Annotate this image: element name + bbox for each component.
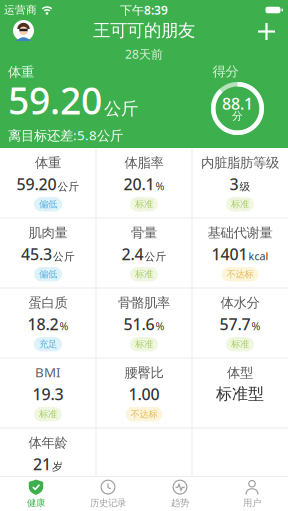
staticText: BMI: [35, 363, 61, 381]
staticText: 19.3: [32, 383, 63, 405]
button[interactable]: 体年龄: [0, 428, 96, 498]
staticText: 偏低: [39, 268, 57, 280]
button[interactable]: 健康: [0, 477, 72, 511]
staticText: 得分: [212, 63, 238, 80]
staticText: 不达标: [226, 268, 253, 280]
staticText: 下午8:39: [120, 2, 168, 18]
button[interactable]: 蛋白质: [0, 288, 96, 358]
staticText: 肌肉量: [28, 225, 67, 241]
staticText: 1.00: [128, 383, 159, 405]
staticText: 健康: [27, 497, 45, 509]
staticText: 45.3: [21, 243, 52, 265]
staticText: 离目标还差:5.8公斤: [8, 126, 123, 144]
button[interactable]: 趋势: [144, 477, 216, 511]
button[interactable]: 体型: [192, 358, 288, 428]
button[interactable]: 历史记录: [72, 477, 144, 511]
staticText: %: [155, 319, 164, 333]
staticText: 标准型: [216, 384, 264, 404]
staticText: 标准: [135, 338, 153, 350]
staticText: 公斤: [144, 250, 166, 263]
button[interactable]: 骨骼肌率: [96, 288, 192, 358]
staticText: 骨量: [131, 225, 157, 241]
staticText: 蛋白质: [28, 295, 67, 311]
button[interactable]: Add: [258, 20, 288, 40]
staticText: 1401: [211, 243, 247, 265]
staticText: 腰臀比: [124, 365, 163, 381]
staticText: 公斤: [104, 98, 138, 119]
staticText: 标准: [231, 338, 249, 350]
staticText: 20.1: [123, 173, 154, 195]
staticText: 51.6: [123, 313, 154, 335]
button[interactable]: 腰臀比: [96, 358, 192, 428]
staticText: 王可可的朋友: [93, 20, 195, 41]
staticText: 体年龄: [28, 435, 67, 451]
button[interactable]: Profile: [0, 20, 34, 41]
staticText: 标准: [135, 198, 153, 210]
staticText: 用户: [243, 497, 261, 509]
button[interactable]: 用户: [216, 477, 288, 511]
staticText: 标准: [231, 198, 249, 210]
staticText: 28天前: [125, 46, 163, 62]
staticText: 体型: [227, 365, 253, 381]
staticText: 历史记录: [90, 497, 126, 509]
button[interactable]: 基础代谢量: [192, 218, 288, 288]
staticText: 59.20: [16, 173, 56, 195]
staticText: %: [251, 319, 260, 333]
staticText: 趋势: [171, 497, 189, 509]
staticText: 基础代谢量: [207, 225, 272, 241]
staticText: kcal: [248, 249, 268, 263]
button[interactable]: 体重: [0, 148, 96, 218]
staticText: 2.4: [121, 243, 143, 265]
staticText: 充足: [39, 338, 57, 350]
staticText: 体重: [8, 64, 34, 80]
staticText: 运营商: [4, 3, 37, 16]
staticText: 57.7: [219, 313, 250, 335]
staticText: 体水分: [220, 295, 259, 311]
staticText: 公斤: [53, 250, 75, 263]
staticText: 偏低: [39, 198, 57, 210]
staticText: %: [59, 319, 68, 333]
staticText: 体脂率: [124, 155, 163, 171]
staticText: 不达标: [130, 408, 157, 420]
button[interactable]: 内脏脂肪等级: [192, 148, 288, 218]
staticText: 3: [229, 173, 238, 195]
staticText: 21: [33, 453, 51, 475]
staticText: 骨骼肌率: [118, 295, 170, 311]
staticText: 59.20: [8, 75, 102, 125]
staticText: 体重: [35, 155, 61, 171]
staticText: 岁: [52, 460, 63, 473]
staticText: 分: [232, 109, 243, 122]
staticText: 公斤: [57, 180, 79, 193]
staticText: 级: [239, 180, 250, 193]
button[interactable]: 肌肉量: [0, 218, 96, 288]
staticText: 88.1: [222, 93, 253, 114]
staticText: 标准: [135, 268, 153, 280]
staticText: 标准: [39, 408, 57, 420]
button[interactable]: BMI: [0, 358, 96, 428]
staticText: %: [155, 179, 164, 193]
button[interactable]: 体水分: [192, 288, 288, 358]
staticText: 18.2: [27, 313, 58, 335]
button[interactable]: 骨量: [96, 218, 192, 288]
staticText: 内脏脂肪等级: [201, 155, 279, 171]
button[interactable]: 体脂率: [96, 148, 192, 218]
